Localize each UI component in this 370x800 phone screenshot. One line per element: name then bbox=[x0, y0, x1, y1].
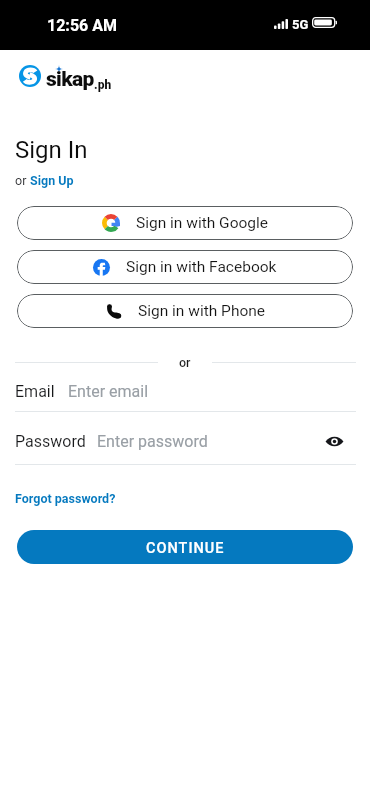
button[interactable]: Sign in with Google bbox=[17, 206, 353, 240]
staticText: Sign in with Facebook bbox=[126, 258, 277, 276]
staticText: or bbox=[15, 173, 30, 188]
button[interactable]: CONTINUE bbox=[17, 530, 353, 564]
staticText: .ph bbox=[94, 78, 112, 92]
button[interactable]: Sign Up bbox=[30, 173, 74, 188]
staticText: Sign In bbox=[15, 136, 88, 164]
staticText: Sign Up bbox=[30, 173, 74, 188]
staticText: Enter email bbox=[68, 382, 149, 401]
other: sikap.ph logo bbox=[19, 65, 41, 87]
staticText: Sign in with Phone bbox=[138, 302, 266, 320]
staticText: Forgot password? bbox=[15, 491, 116, 506]
staticText: Password bbox=[15, 432, 86, 451]
staticText: 5G bbox=[292, 17, 309, 32]
staticText: sikap bbox=[46, 67, 94, 92]
staticText: CONTINUE bbox=[146, 540, 225, 557]
staticText: 12:56 AM bbox=[47, 16, 118, 35]
button[interactable]: Sign in with Phone bbox=[17, 294, 353, 328]
staticText: Enter password bbox=[97, 432, 208, 451]
staticText: Email bbox=[15, 382, 55, 401]
button[interactable]: Show password bbox=[323, 430, 345, 452]
button[interactable]: Forgot password? bbox=[15, 491, 116, 506]
button[interactable]: Sign in with Facebook bbox=[17, 250, 353, 284]
staticText: or bbox=[179, 355, 191, 370]
staticText: Sign in with Google bbox=[136, 214, 269, 232]
